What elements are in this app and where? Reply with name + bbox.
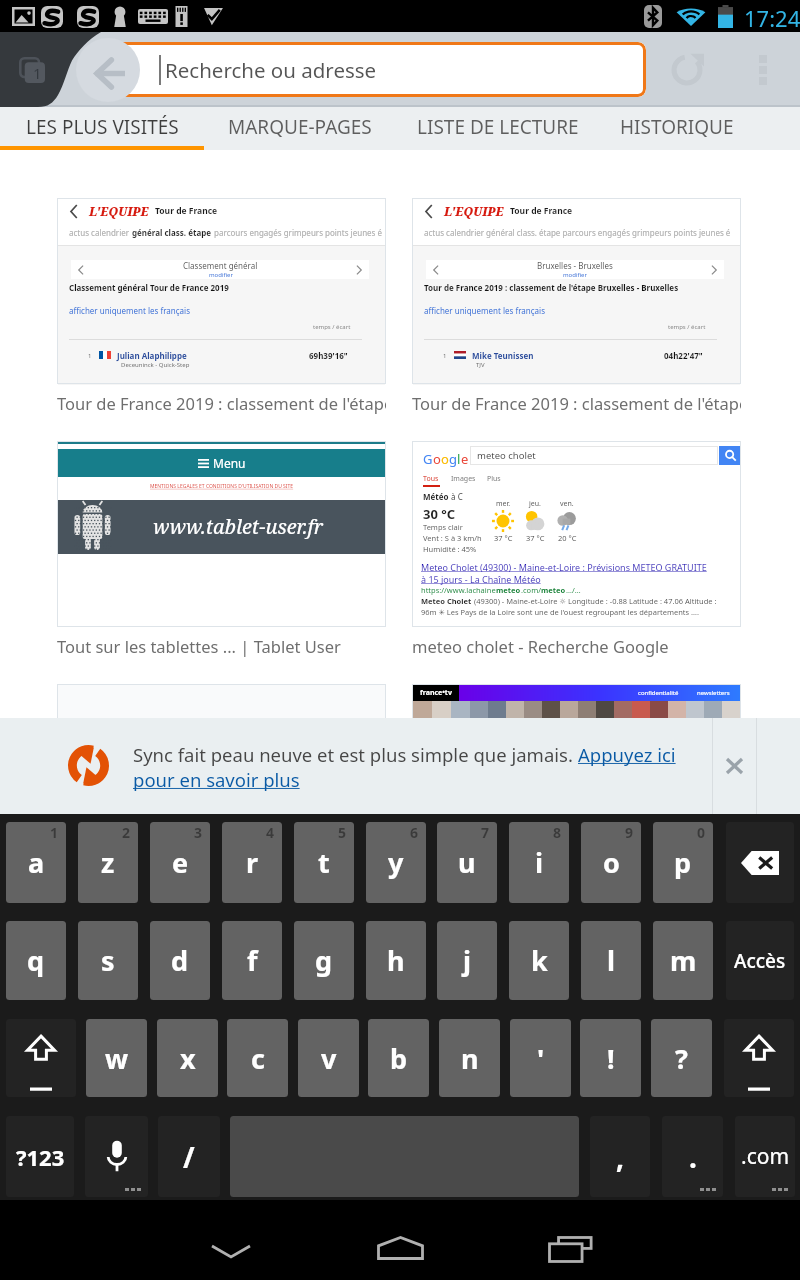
button[interactable]: b — [368, 1019, 429, 1097]
button[interactable]: Menu — [57, 441, 386, 665]
staticText: 3 — [194, 823, 203, 842]
staticText: MENTIONS LEGALES ET CONDITIONS D'UTILISA… — [150, 483, 294, 490]
staticText: g — [315, 942, 333, 979]
button[interactable]: . — [662, 1116, 723, 1197]
button[interactable]: p — [653, 822, 713, 903]
staticText: 6 — [410, 823, 419, 842]
button[interactable]: MARQUE-PAGES — [204, 107, 396, 150]
staticText: v — [321, 1040, 337, 1077]
button[interactable]: l — [581, 921, 641, 1000]
button[interactable]: L'EQUIPE — [57, 198, 386, 422]
staticText: 4 — [266, 823, 275, 842]
button[interactable]: v — [298, 1019, 359, 1097]
button[interactable]: Accès — [726, 921, 794, 1000]
staticText: 5 — [338, 823, 347, 842]
button[interactable]: , — [590, 1116, 650, 1197]
staticText: Vent : S à 3 km/h — [423, 533, 482, 543]
button[interactable]: x — [157, 1019, 218, 1097]
staticText: t — [318, 844, 330, 881]
button[interactable]: r — [222, 822, 282, 903]
button[interactable]: Reload — [659, 42, 715, 98]
staticText: r — [246, 844, 259, 881]
button[interactable]: LES PLUS VISITÉS — [0, 107, 204, 150]
button[interactable]: ' — [510, 1019, 571, 1097]
staticText: 2 — [122, 823, 131, 842]
staticText: modifier — [563, 271, 587, 279]
button[interactable]: i — [509, 822, 569, 903]
staticText: 69h39'16" — [309, 350, 348, 361]
button[interactable]: Recents — [530, 1200, 610, 1280]
button[interactable]: t — [294, 822, 354, 903]
staticText: Tour de France — [155, 205, 218, 217]
staticText: actus calendrier — [69, 227, 132, 238]
button[interactable]: n — [439, 1019, 500, 1097]
staticText: ! — [607, 1040, 615, 1077]
button[interactable]: G — [412, 441, 741, 665]
staticText: i — [535, 844, 544, 881]
staticText: o — [433, 450, 441, 468]
button[interactable]: ? — [651, 1019, 712, 1097]
staticText: meteo cholet — [477, 449, 536, 462]
button[interactable]: LISTE DE LECTURE — [396, 107, 600, 150]
button[interactable] — [726, 822, 794, 903]
staticText: 8 — [553, 823, 562, 842]
button[interactable]: u — [437, 822, 497, 903]
staticText: L'EQUIPE — [444, 203, 504, 219]
button[interactable]: .com — [735, 1116, 795, 1197]
button[interactable]: s — [78, 921, 138, 1000]
button[interactable]: w — [86, 1019, 147, 1097]
button[interactable]: e — [150, 822, 210, 903]
button[interactable]: ?123 — [6, 1116, 74, 1197]
staticText: l — [607, 942, 616, 979]
button[interactable]: a — [6, 822, 66, 903]
button[interactable]: j — [437, 921, 497, 1000]
staticText: m — [670, 942, 697, 979]
staticText: 37 °C — [494, 533, 513, 543]
button[interactable]: f — [222, 921, 282, 1000]
button[interactable]: HISTORIQUE — [600, 107, 754, 150]
button[interactable]: france•tv — [412, 684, 741, 908]
staticText: d — [171, 942, 189, 979]
button[interactable]: k — [509, 921, 569, 1000]
button[interactable]: q — [6, 921, 66, 1000]
button[interactable]: Recherche ou adresse — [100, 42, 646, 97]
staticText: 17:24 — [744, 3, 800, 33]
staticText: 96m ✳ Les Pays de la Loire sont une de l… — [421, 607, 699, 617]
button[interactable]: Home — [360, 1200, 440, 1280]
button[interactable] — [57, 684, 386, 908]
button[interactable]: / — [158, 1116, 220, 1197]
button[interactable]: Close — [713, 718, 756, 814]
staticText: général class. étape — [132, 227, 212, 238]
button[interactable] — [6, 1019, 76, 1097]
staticText: (49300) - Maine-et-Loire ☼ Longitude : -… — [472, 596, 717, 606]
staticText: meteo — [496, 585, 521, 595]
staticText: ? — [675, 1040, 688, 1077]
staticText: f — [247, 942, 258, 979]
button[interactable]: m — [653, 921, 713, 1000]
staticText: a — [28, 844, 45, 881]
button[interactable]: y — [366, 822, 426, 903]
staticText: à C — [449, 491, 463, 502]
button[interactable]: z — [78, 822, 138, 903]
staticText: Tour de France 2019 : classement de l'ét… — [57, 392, 386, 414]
staticText: z — [101, 844, 115, 881]
button[interactable]: Back — [191, 1200, 271, 1280]
button[interactable]: c — [227, 1019, 288, 1097]
staticText: Tour de France 2019 : classement de l'ét… — [412, 392, 741, 414]
button[interactable]: o — [581, 822, 641, 903]
staticText: e — [461, 450, 469, 468]
button[interactable]: ! — [580, 1019, 641, 1097]
button[interactable]: Back — [76, 38, 140, 102]
button[interactable]: Tabs — [6, 44, 58, 96]
button[interactable]: g — [294, 921, 354, 1000]
staticText: Deceuninck - Quick-Step — [121, 361, 190, 369]
button[interactable] — [85, 1116, 148, 1197]
staticText: 9 — [625, 823, 634, 842]
staticText: TJV — [476, 361, 485, 369]
button[interactable] — [724, 1019, 794, 1097]
button[interactable]: d — [150, 921, 210, 1000]
button[interactable]: h — [366, 921, 426, 1000]
button[interactable]: L'EQUIPE — [412, 198, 741, 422]
